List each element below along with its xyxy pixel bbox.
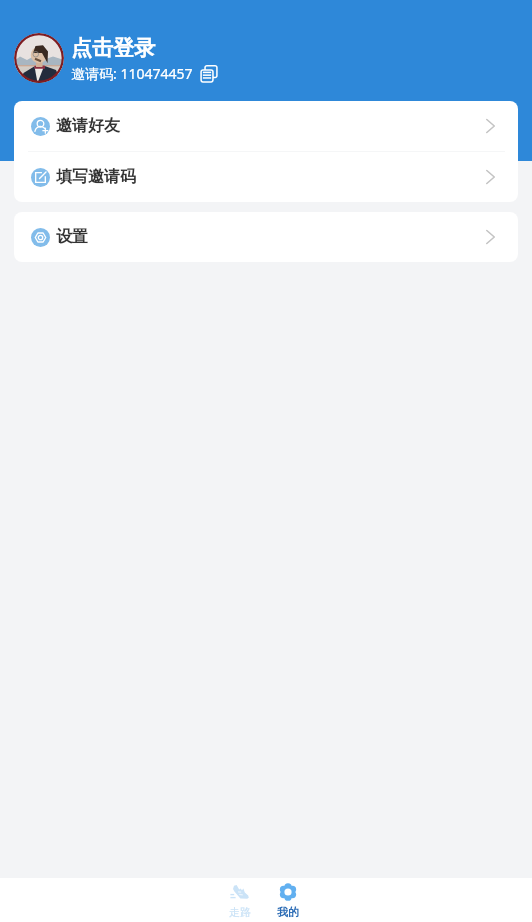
button[interactable]: 走路 (216, 878, 264, 922)
button[interactable]: 头像 (14, 33, 64, 83)
button[interactable]: 邀请好友 (14, 101, 518, 151)
staticText: 填写邀请码 (56, 167, 136, 187)
staticText: 走路 (229, 905, 251, 919)
staticText: 点击登录 (71, 35, 155, 61)
staticText: 邀请码: 110474457 (71, 64, 193, 83)
staticText: 邀请好友 (56, 116, 120, 136)
button[interactable]: 设置 (14, 212, 518, 262)
button[interactable]: 点击登录 (71, 35, 155, 61)
button[interactable]: 我的 (264, 878, 312, 922)
staticText: 设置 (56, 227, 88, 247)
button[interactable]: 填写邀请码 (14, 152, 518, 202)
staticText: 我的 (277, 905, 299, 919)
button[interactable]: 复制邀请码 (200, 65, 218, 83)
